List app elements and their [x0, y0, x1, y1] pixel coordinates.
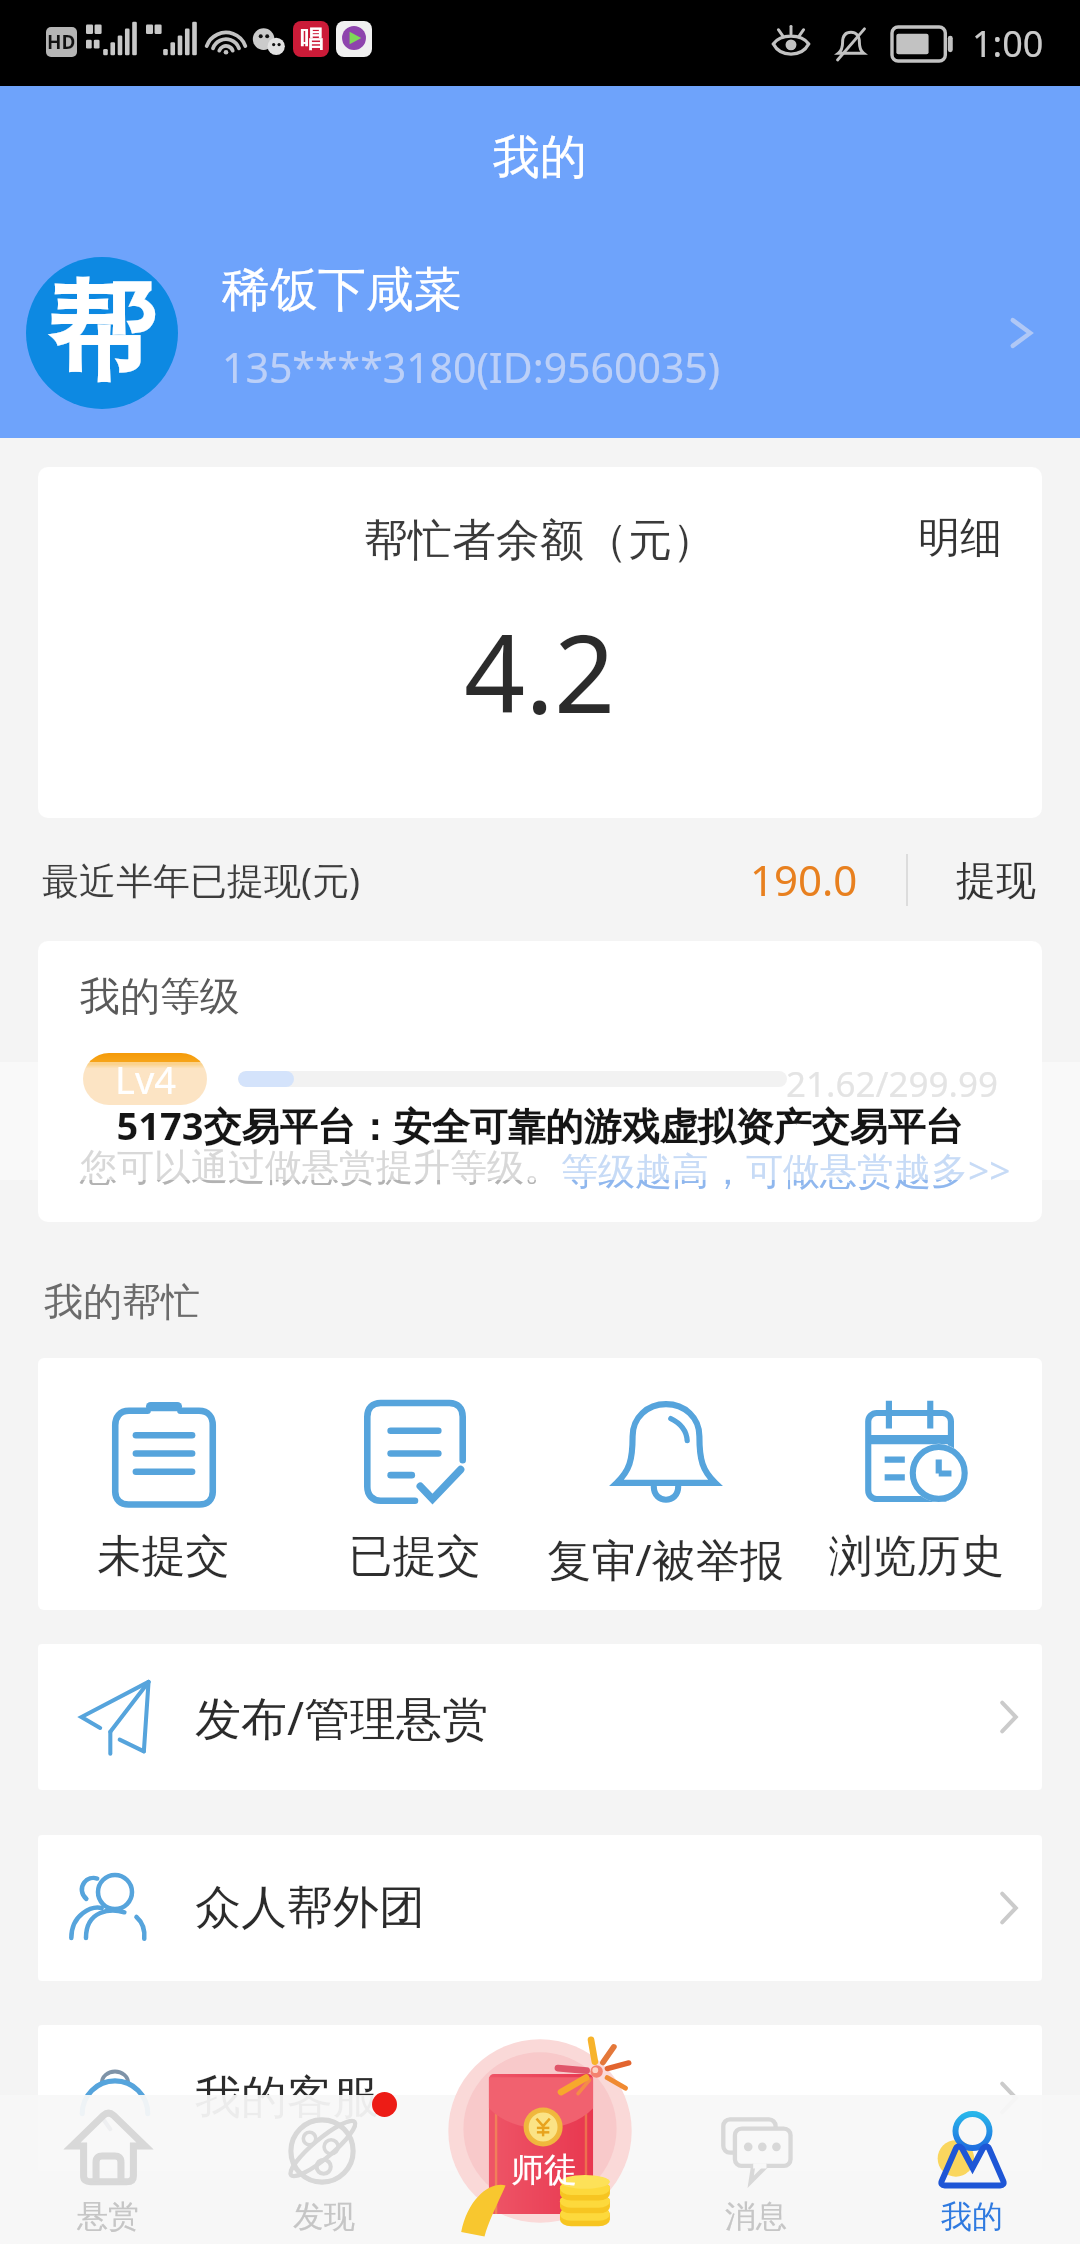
staticText: 我的等级 [80, 971, 240, 1021]
staticText: 提现 [956, 855, 1036, 905]
button[interactable]: 师徒红包 [429, 2020, 651, 2169]
staticText: 稀饭下咸菜 [222, 260, 462, 320]
staticText: HD [47, 29, 76, 55]
staticText: 最近半年已提现(元) [42, 854, 361, 905]
staticText: 21.62/299.99 [38, 1060, 998, 1108]
button[interactable]: 发布/管理悬赏 [38, 1644, 1042, 1790]
staticText: 我的客服 [195, 2069, 379, 2127]
button[interactable]: 我的客服 [38, 2025, 1042, 2171]
button[interactable]: 发现 [216, 2095, 432, 2244]
staticText: 5173交易平台：安全可靠的游戏虚拟资产交易平台 [0, 1099, 1080, 1151]
staticText: 浏览历史 [791, 1529, 1042, 1584]
button[interactable]: 师徒 [432, 2095, 648, 2244]
staticText: 我的 [493, 128, 587, 187]
staticText: 帮忙者余额（元） [364, 513, 716, 568]
staticText: 我的帮忙 [44, 1277, 200, 1326]
staticText: 悬赏 [0, 2197, 216, 2236]
button[interactable]: 浏览历史 [791, 1358, 1042, 1610]
button[interactable]: 消息 [648, 2095, 864, 2244]
staticText: 4.2 [464, 599, 616, 745]
staticText: 1:00 [972, 19, 1044, 68]
button[interactable]: 已提交 [289, 1358, 540, 1610]
button[interactable]: 悬赏 [0, 2095, 216, 2244]
button[interactable]: 我的 [864, 2095, 1080, 2244]
staticText: 135****3180(ID:9560035) [222, 339, 721, 395]
button[interactable]: 帮 [0, 257, 1080, 409]
staticText: 明细 [918, 512, 1002, 565]
staticText: 唱 [300, 25, 323, 54]
staticText: 190.0 [750, 851, 858, 908]
staticText: 帮 [48, 265, 156, 401]
staticText: 师徒 [511, 2149, 577, 2191]
staticText: 我的 [864, 2197, 1080, 2236]
staticText: 消息 [648, 2197, 864, 2236]
button[interactable]: 未提交 [38, 1358, 289, 1610]
staticText: Lv4 [115, 1053, 176, 1105]
button[interactable]: 明细 [918, 467, 1042, 565]
staticText: 众人帮外团 [195, 1879, 425, 1937]
staticText: 已提交 [289, 1529, 540, 1584]
button[interactable]: 众人帮外团 [38, 1835, 1042, 1981]
staticText: 发现 [216, 2197, 432, 2236]
staticText: 您可以通过做悬赏提升等级。 [80, 1144, 561, 1191]
staticText: 发布/管理悬赏 [195, 1686, 489, 1749]
button[interactable]: 复审/被举报 [540, 1358, 791, 1610]
staticText: 等级越高，可做悬赏越多>> [561, 1144, 1011, 1195]
staticText: 未提交 [38, 1529, 289, 1584]
staticText: 复审/被举报 [540, 1529, 791, 1589]
button[interactable]: 提现 [956, 855, 1036, 905]
